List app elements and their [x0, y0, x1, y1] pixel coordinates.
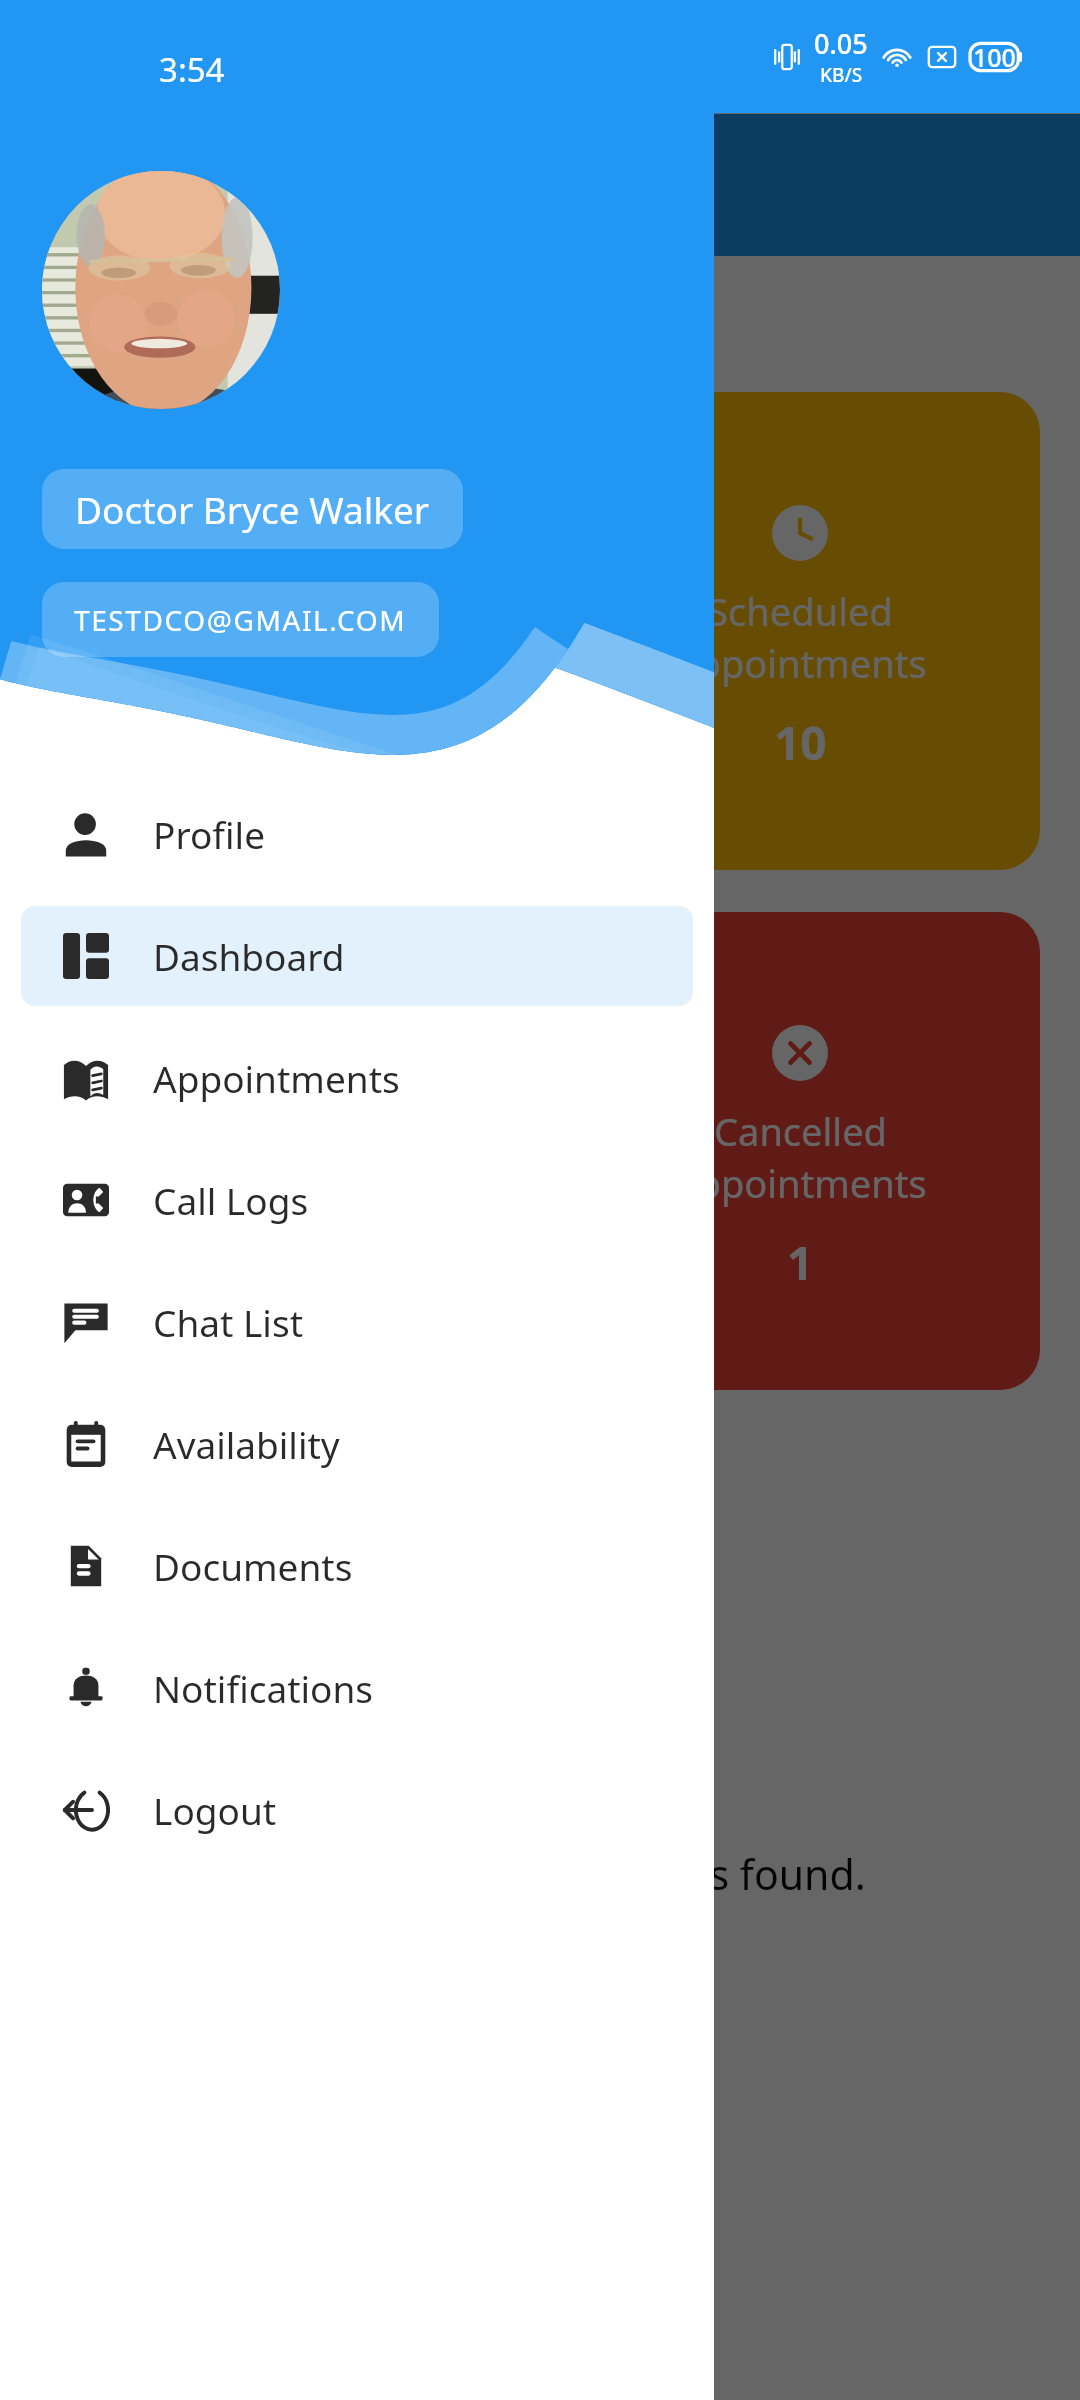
button[interactable]: Notifications	[21, 1638, 693, 1738]
staticText: KB/S	[820, 62, 863, 88]
staticText: Availability	[153, 1419, 340, 1469]
staticText: Call Logs	[153, 1175, 309, 1225]
staticText: Logout	[153, 1785, 277, 1835]
staticText: Appointments	[673, 1157, 927, 1209]
staticText: Doctor Bryce Walker	[75, 484, 430, 534]
staticText: Documents	[153, 1541, 353, 1591]
staticText: Dashboard	[153, 931, 345, 981]
button[interactable]: Total	[40, 912, 520, 1390]
staticText: Profile	[153, 809, 265, 859]
staticText: Completed	[182, 585, 378, 637]
button[interactable]: Logout	[21, 1760, 693, 1860]
button[interactable]: Cancelled	[560, 912, 1040, 1390]
staticText: 100	[973, 40, 1016, 74]
staticText: No record was found.	[452, 1846, 866, 1902]
staticText: Scheduled	[707, 585, 893, 637]
button[interactable]: TESTDCO@GMAIL.COM	[42, 582, 439, 657]
button[interactable]: Documents	[21, 1516, 693, 1616]
button[interactable]: Appointments	[21, 1028, 693, 1128]
staticText: 4	[267, 711, 294, 774]
staticText: Cancelled	[714, 1105, 887, 1157]
staticText: TESTDCO@GMAIL.COM	[74, 601, 407, 639]
staticText: 3:54	[159, 47, 225, 92]
button[interactable]: Completed	[40, 392, 520, 870]
staticText: 10	[774, 711, 827, 774]
button[interactable]: Call Logs	[21, 1150, 693, 1250]
button[interactable]: Dashboard	[21, 906, 693, 1006]
staticText: Chat List	[153, 1297, 303, 1347]
button[interactable]: Profile	[21, 784, 693, 884]
staticText: Appointments	[153, 1053, 400, 1103]
staticText: Notifications	[153, 1663, 374, 1713]
staticText: 1	[787, 1231, 814, 1294]
staticText: 0.05	[814, 25, 868, 62]
staticText: Appointments	[153, 1157, 407, 1209]
button[interactable]: Doctor Bryce Walker	[42, 469, 463, 549]
button[interactable]: Scheduled	[560, 392, 1040, 870]
button[interactable]: Chat List	[21, 1272, 693, 1372]
staticText: Appointments	[153, 637, 407, 689]
button[interactable]: Availability	[21, 1394, 693, 1494]
staticText: Appointments	[673, 637, 927, 689]
